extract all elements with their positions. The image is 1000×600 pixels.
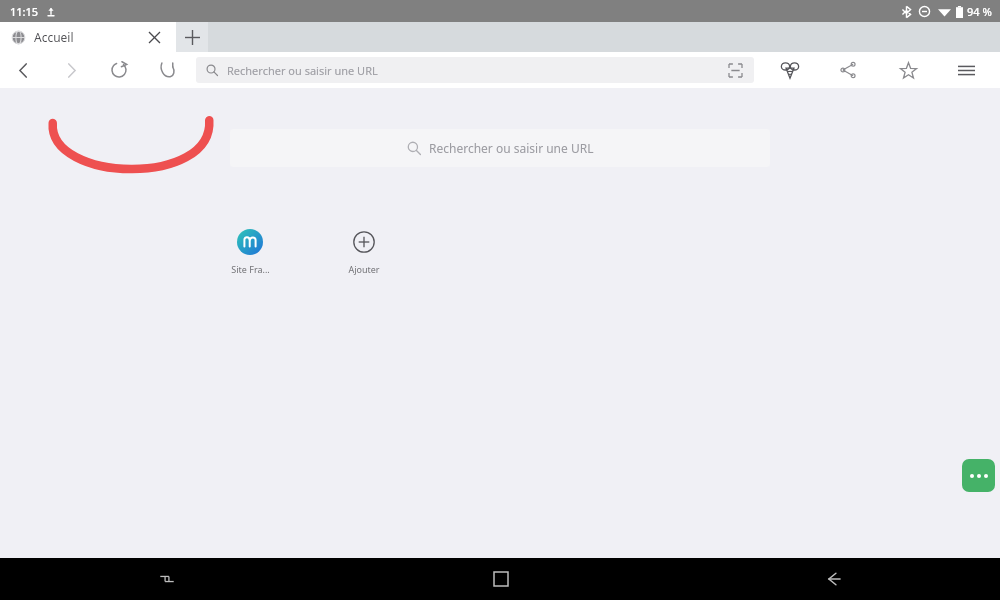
button[interactable]: Partager	[834, 56, 862, 84]
button[interactable]: Retour	[667, 558, 1000, 600]
button[interactable]: Menu	[952, 56, 980, 84]
button[interactable]: Suivant	[56, 55, 86, 85]
button[interactable]: Ajouter	[336, 226, 392, 277]
button[interactable]: Actualiser	[104, 55, 134, 85]
staticText: Accueil	[34, 29, 74, 45]
staticText: Rechercher ou saisir une URL	[429, 140, 594, 156]
button[interactable]: Favoris	[894, 56, 922, 84]
button[interactable]: Accueil	[334, 558, 667, 600]
button[interactable]: Rechercher ou saisir une URL	[230, 129, 770, 167]
button[interactable]: Fermer l'onglet	[144, 27, 164, 47]
button[interactable]: Extensions	[776, 56, 804, 84]
button[interactable]: Nouvel onglet	[176, 22, 208, 52]
staticText: 11:15	[10, 4, 39, 19]
staticText: Rechercher ou saisir une URL	[227, 63, 378, 78]
staticText: Site Fra...	[231, 263, 270, 275]
button[interactable]: Précédent	[8, 55, 38, 85]
button[interactable]: Scanner un code	[726, 61, 744, 79]
button[interactable]: Accueil	[152, 55, 182, 85]
button[interactable]: Accueil	[0, 22, 176, 52]
button[interactable]: Site Fra...	[222, 226, 278, 277]
button[interactable]: Rechercher ou saisir une URL	[196, 57, 754, 83]
staticText: Ajouter	[348, 263, 380, 275]
button[interactable]: Applications récentes	[0, 558, 334, 600]
staticText: 94 %	[967, 4, 992, 19]
button[interactable]: Plus d'options	[962, 459, 995, 492]
